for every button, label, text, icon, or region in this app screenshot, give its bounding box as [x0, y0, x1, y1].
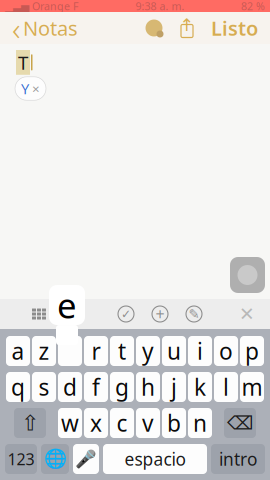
button[interactable]: y [136, 336, 160, 366]
staticText: q [11, 372, 25, 402]
button[interactable]: o [214, 336, 238, 366]
button[interactable]: Dictation [73, 444, 99, 474]
button[interactable]: k [188, 372, 212, 402]
staticText: ✎ [188, 306, 199, 321]
button[interactable]: Close [230, 300, 264, 328]
staticText: t [118, 336, 126, 366]
button[interactable]: p [240, 336, 264, 366]
staticText: a [11, 336, 24, 366]
button[interactable]: c [110, 408, 134, 438]
staticText: m [241, 372, 262, 402]
staticText: u [167, 336, 181, 366]
button[interactable]: b [162, 408, 186, 438]
staticText: n [193, 408, 207, 438]
button[interactable]: ‹ [4, 13, 86, 43]
staticText: p [245, 336, 259, 366]
button[interactable]: Recording indicator [230, 257, 265, 293]
staticText: T [18, 50, 28, 75]
staticText: a [67, 301, 78, 327]
button[interactable]: u [162, 336, 186, 366]
staticText: d [63, 372, 77, 402]
staticText: Y [21, 79, 29, 98]
button[interactable]: q [6, 372, 30, 402]
staticText: ▁▃▅ Orange F [5, 0, 79, 13]
button[interactable]: d [58, 372, 82, 402]
button[interactable]: l [214, 372, 238, 402]
staticText: e [57, 282, 77, 328]
button[interactable]: t [110, 336, 134, 366]
button[interactable]: w [58, 408, 82, 438]
staticText: Listo [211, 15, 258, 41]
button[interactable]: j [162, 372, 186, 402]
button[interactable]: intro [211, 444, 265, 474]
button[interactable]: Listo [203, 13, 266, 43]
staticText: f [92, 372, 100, 402]
button[interactable]: Table [22, 300, 56, 328]
button[interactable]: z [32, 336, 56, 366]
staticText: ✕ [239, 303, 255, 325]
button[interactable]: Add attachment [143, 300, 177, 328]
button[interactable]: Share [171, 13, 203, 43]
staticText: b [167, 408, 181, 438]
staticText: l [223, 372, 229, 402]
staticText: z [38, 336, 49, 366]
staticText: o [219, 336, 233, 366]
staticText: k [194, 372, 206, 402]
staticText: v [142, 408, 154, 438]
staticText: y [142, 336, 154, 366]
button[interactable]: Add people [137, 13, 171, 43]
button[interactable]: m [240, 372, 264, 402]
staticText: i [197, 336, 203, 366]
staticText: 123 [7, 448, 34, 470]
staticText: ⇧ [21, 411, 39, 435]
staticText: ✓ [121, 307, 131, 321]
staticText: 82 % [241, 0, 265, 13]
staticText: ↑ [179, 15, 194, 35]
button[interactable]: Format [56, 300, 90, 328]
staticText: 9:38 a. m. [135, 0, 184, 13]
button[interactable]: Checklist [109, 300, 143, 328]
button[interactable]: ⇧ [14, 408, 46, 438]
button[interactable]: v [136, 408, 160, 438]
button[interactable]: s [32, 372, 56, 402]
staticText: + [155, 303, 164, 325]
staticText: espacio [124, 447, 185, 470]
staticText: ⌫ [227, 412, 253, 434]
staticText: 🌐 [43, 448, 66, 470]
button[interactable]: ⌫ [224, 408, 256, 438]
staticText: c [116, 408, 127, 438]
button[interactable]: 🌐 [41, 444, 69, 474]
button[interactable]: Markup [177, 300, 211, 328]
staticText: intro [219, 447, 257, 470]
button[interactable]: espacio [103, 444, 207, 474]
staticText: j [171, 372, 177, 402]
staticText: × [32, 80, 40, 97]
button[interactable]: x [84, 408, 108, 438]
staticText: s [38, 372, 49, 402]
button[interactable]: i [188, 336, 212, 366]
staticText: h [141, 372, 155, 402]
button[interactable]: r [84, 336, 108, 366]
staticText: r [91, 336, 100, 366]
button[interactable]: n [188, 408, 212, 438]
button[interactable]: g [110, 372, 134, 402]
staticText: 🎤 [75, 449, 97, 469]
staticText: ‹ [12, 7, 20, 49]
button[interactable]: a [6, 336, 30, 366]
staticText: Notas [23, 15, 78, 41]
button[interactable]: f [84, 372, 108, 402]
button[interactable]: 123 [5, 444, 37, 474]
staticText: x [90, 408, 102, 438]
staticText: w [61, 408, 79, 438]
button[interactable]: h [136, 372, 160, 402]
staticText: g [115, 372, 129, 402]
